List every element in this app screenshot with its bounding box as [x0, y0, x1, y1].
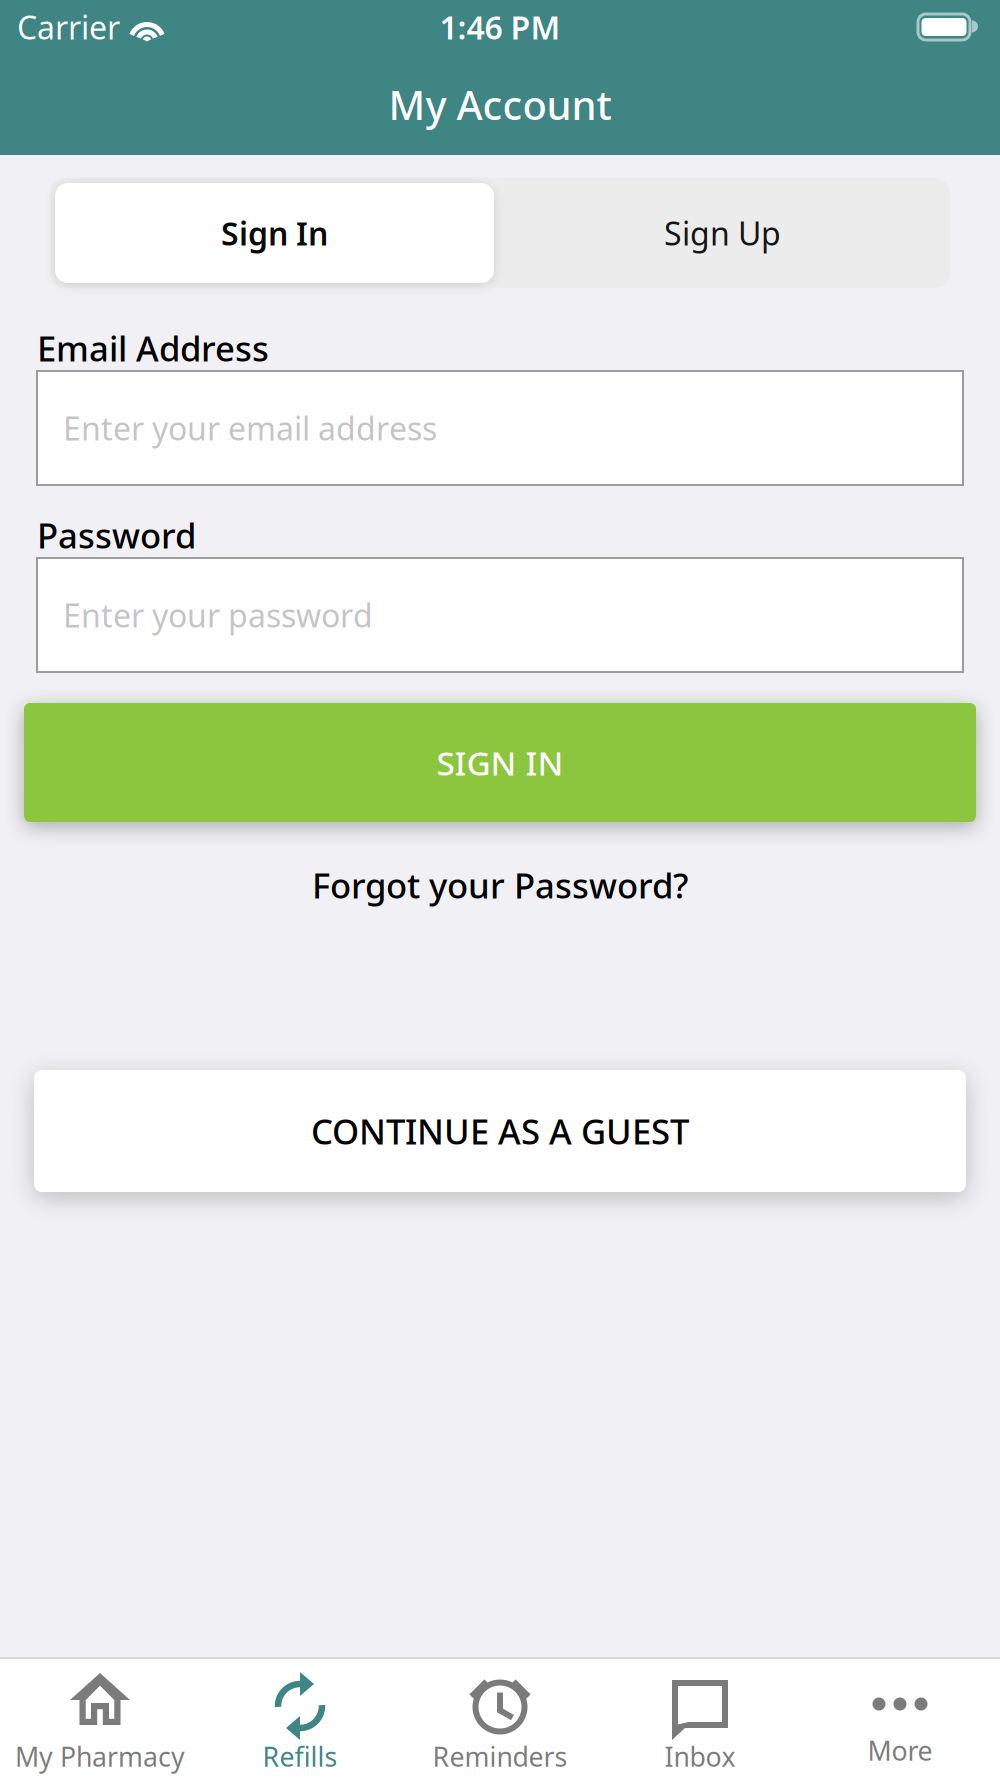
button[interactable]: Sign Up	[500, 183, 945, 283]
staticText: Enter your password	[63, 594, 373, 636]
staticText: My Account	[388, 78, 611, 131]
staticText: My Pharmacy	[15, 1739, 185, 1774]
staticText: Sign In	[221, 212, 328, 254]
staticText: 1:46 PM	[439, 6, 560, 48]
staticText: Reminders	[432, 1739, 567, 1774]
button[interactable]: More	[800, 1665, 1000, 1772]
button[interactable]: Forgot your Password?	[292, 822, 708, 918]
button[interactable]: My Pharmacy	[0, 1659, 200, 1778]
button[interactable]: Sign In	[55, 183, 500, 283]
button[interactable]: CONTINUE AS A GUEST	[0, 918, 1000, 1192]
staticText: Sign Up	[664, 212, 781, 254]
button[interactable]: SIGN IN	[0, 672, 1000, 822]
button[interactable]: Refills	[200, 1659, 400, 1778]
staticText: CONTINUE AS A GUEST	[311, 1108, 689, 1154]
staticText: Refills	[262, 1739, 337, 1774]
staticText: Forgot your Password?	[312, 862, 688, 908]
staticText: SIGN IN	[436, 740, 563, 785]
staticText: Password	[37, 512, 196, 558]
button[interactable]: Reminders	[400, 1659, 600, 1778]
staticText: More	[867, 1733, 932, 1768]
button[interactable]: Inbox	[600, 1659, 800, 1778]
staticText: Email Address	[37, 325, 269, 371]
staticText: Inbox	[664, 1739, 735, 1774]
staticText: Enter your email address	[63, 407, 437, 449]
staticText: Carrier	[17, 6, 120, 48]
